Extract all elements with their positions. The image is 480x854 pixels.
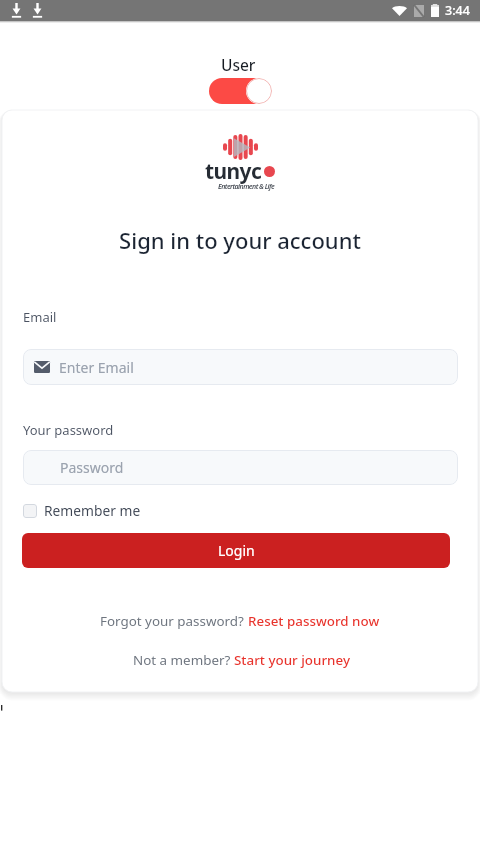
staticText: Login (218, 541, 255, 560)
staticText: Remember me (44, 501, 141, 520)
staticText: Forgot your password? (100, 612, 248, 630)
staticText: User (221, 54, 256, 75)
staticText: Entertainment & Life (218, 182, 275, 192)
staticText: Start your journey (234, 651, 350, 669)
button[interactable]: Reset password now (248, 612, 380, 630)
staticText: Sign in to your account (0, 225, 480, 255)
staticText: Enter Email (59, 358, 134, 377)
button[interactable]: Enter Email (23, 349, 458, 385)
button[interactable]: Login (22, 533, 450, 568)
button[interactable]: Password (23, 450, 458, 485)
staticText: 3:44 (445, 2, 470, 19)
staticText: Not a member? (133, 651, 234, 669)
staticText: Your password (23, 421, 114, 439)
button[interactable]: Start your journey (234, 651, 350, 669)
button[interactable]: User toggle (209, 78, 272, 104)
staticText: Email (23, 308, 57, 326)
staticText: Reset password now (248, 612, 380, 630)
staticText: tunyc (205, 157, 262, 186)
button[interactable]: Remember me (21, 500, 143, 521)
staticText: Password (60, 458, 124, 477)
